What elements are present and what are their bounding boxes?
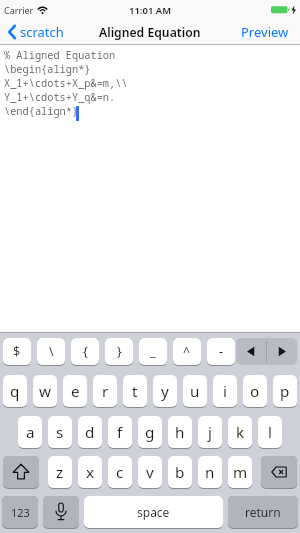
staticText: \	[49, 343, 54, 360]
button[interactable]: o	[243, 375, 267, 407]
staticText: 11:01 AM	[129, 4, 172, 17]
staticText: o	[250, 381, 260, 402]
button[interactable]: return	[228, 496, 298, 528]
button[interactable]: d	[78, 416, 102, 448]
button[interactable]: ^	[173, 338, 201, 365]
button[interactable]: a	[18, 416, 42, 448]
staticText: _	[150, 343, 156, 360]
staticText: v	[146, 462, 154, 483]
staticText: u	[190, 381, 200, 402]
button[interactable]: l	[258, 416, 282, 448]
staticText: Aligned Equation	[99, 24, 201, 41]
staticText: 123	[11, 505, 30, 520]
button[interactable]: p	[273, 375, 297, 407]
staticText: f	[117, 422, 123, 443]
button[interactable]: g	[138, 416, 162, 448]
button[interactable]	[3, 456, 39, 488]
staticText: r	[102, 381, 109, 402]
staticText: l	[268, 422, 272, 443]
button[interactable]: \	[37, 338, 65, 365]
button[interactable]: i	[213, 375, 237, 407]
staticText: z	[56, 462, 64, 483]
button[interactable]	[43, 496, 79, 528]
button[interactable]: y	[153, 375, 177, 407]
staticText: g	[145, 422, 155, 443]
staticText: a	[26, 422, 35, 443]
button[interactable]: b	[168, 456, 192, 488]
staticText: x	[86, 462, 95, 483]
staticText: space	[137, 504, 170, 520]
button[interactable]: scratch	[8, 23, 64, 41]
button[interactable]: $	[3, 338, 31, 365]
button[interactable]: s	[48, 416, 72, 448]
staticText: $	[13, 343, 21, 360]
button[interactable]: x	[78, 456, 102, 488]
staticText: w	[39, 381, 51, 402]
staticText: j	[208, 422, 212, 443]
button[interactable]: j	[198, 416, 222, 448]
button[interactable]: m	[228, 456, 252, 488]
button[interactable]: {	[71, 338, 99, 365]
button[interactable]: t	[123, 375, 147, 407]
button[interactable]: _	[139, 338, 167, 365]
staticText: i	[223, 381, 227, 402]
staticText: y	[161, 381, 169, 402]
button[interactable]	[236, 338, 297, 365]
button[interactable]: h	[168, 416, 192, 448]
button[interactable]: n	[198, 456, 222, 488]
button[interactable]: k	[228, 416, 252, 448]
button[interactable]	[261, 456, 297, 488]
button[interactable]: e	[63, 375, 87, 407]
button[interactable]: space	[84, 496, 223, 528]
staticText: -	[219, 343, 224, 360]
staticText: k	[236, 422, 245, 443]
button[interactable]: w	[33, 375, 57, 407]
staticText: Carrier	[4, 4, 34, 16]
staticText: s	[56, 422, 64, 443]
staticText: ^	[183, 343, 191, 360]
button[interactable]: z	[48, 456, 72, 488]
staticText: e	[71, 381, 80, 402]
staticText: scratch	[20, 23, 64, 41]
staticText: b	[175, 462, 185, 483]
staticText: c	[116, 462, 124, 483]
button[interactable]: Preview	[241, 23, 289, 41]
staticText: p	[280, 381, 290, 402]
staticText: m	[233, 462, 248, 483]
button[interactable]: }	[105, 338, 133, 365]
staticText: {	[83, 343, 88, 360]
staticText: t	[132, 381, 138, 402]
staticText: n	[205, 462, 215, 483]
button[interactable]: -	[207, 338, 235, 365]
button[interactable]: q	[3, 375, 27, 407]
staticText: q	[10, 381, 20, 402]
button[interactable]: 123	[2, 496, 38, 528]
button[interactable]: u	[183, 375, 207, 407]
staticText: h	[175, 422, 185, 443]
button[interactable]: r	[93, 375, 117, 407]
button[interactable]: f	[108, 416, 132, 448]
staticText: }	[117, 343, 122, 360]
staticText: return	[245, 504, 281, 520]
staticText: % Aligned Equation \begin{align*} X_1+\c…	[4, 48, 128, 118]
button[interactable]: c	[108, 456, 132, 488]
button[interactable]: v	[138, 456, 162, 488]
staticText: d	[85, 422, 95, 443]
